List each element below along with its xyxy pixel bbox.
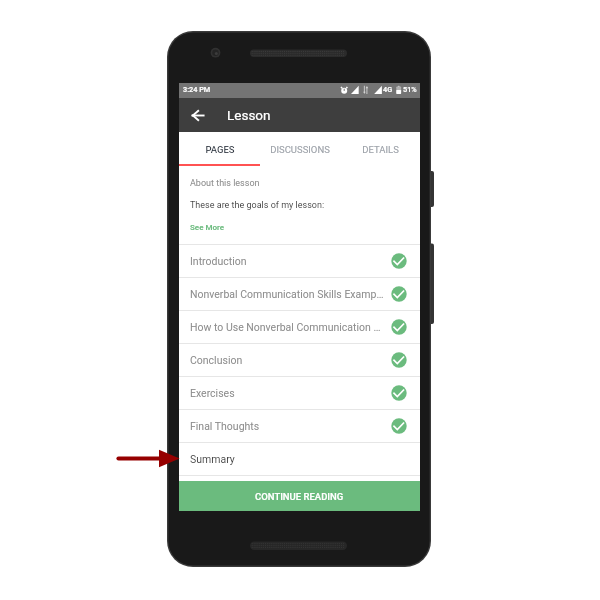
button[interactable]: How to Use Nonverbal Communication … — [179, 311, 420, 343]
button[interactable]: PAGES — [179, 132, 260, 165]
button[interactable]: Introduction — [179, 245, 420, 277]
staticText: 51% — [403, 85, 417, 94]
staticText: Summary — [190, 453, 420, 465]
staticText: Nonverbal Communication Skills Examp… — [190, 288, 388, 300]
staticText: Introduction — [190, 255, 388, 267]
button[interactable]: DISCUSSIONS — [260, 132, 340, 165]
staticText: 3:24 PM — [183, 85, 211, 94]
staticText: CONTINUE READING — [255, 491, 344, 502]
button[interactable]: Exercises — [179, 377, 420, 409]
staticText: PAGES — [205, 144, 235, 155]
staticText: 4G — [383, 85, 393, 94]
button[interactable]: Back — [185, 102, 211, 128]
button[interactable]: Conclusion — [179, 344, 420, 376]
staticText: These are the goals of my lesson: — [190, 200, 325, 211]
button[interactable]: See More — [190, 223, 224, 232]
button[interactable]: CONTINUE READING — [179, 481, 420, 511]
staticText: Lesson — [227, 107, 271, 123]
button[interactable]: DETAILS — [340, 132, 420, 165]
staticText: Final Thoughts — [190, 420, 388, 432]
staticText: How to Use Nonverbal Communication … — [190, 321, 388, 333]
staticText: DETAILS — [362, 144, 399, 155]
staticText: About this lesson — [190, 178, 260, 189]
staticText: Exercises — [190, 387, 388, 399]
staticText: DISCUSSIONS — [270, 144, 330, 155]
button[interactable]: Final Thoughts — [179, 410, 420, 442]
staticText: Conclusion — [190, 354, 388, 366]
button[interactable]: Summary — [179, 443, 420, 475]
button[interactable]: Nonverbal Communication Skills Examp… — [179, 278, 420, 310]
